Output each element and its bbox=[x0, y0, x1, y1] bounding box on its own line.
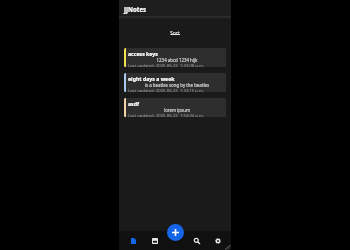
button[interactable]: Sort bbox=[167, 30, 183, 35]
button[interactable]: asdf bbox=[124, 98, 226, 117]
staticText: asdf bbox=[128, 100, 139, 107]
staticText: Last updated: 2025-06-23, 1:54:04 p.m. bbox=[128, 113, 205, 117]
staticText: access keys bbox=[128, 50, 158, 57]
button[interactable]: access keys bbox=[124, 48, 226, 67]
button[interactable]: Add note bbox=[167, 224, 184, 241]
staticText: is a beatles song by the beatles bbox=[128, 82, 226, 88]
staticText: 1234 abcd 1234 hijk bbox=[128, 57, 226, 63]
staticText: lorem ipsum bbox=[128, 107, 226, 113]
button[interactable]: eight days a week bbox=[124, 73, 226, 92]
button[interactable]: Notes bbox=[122, 231, 144, 250]
staticText: Sort bbox=[170, 30, 180, 35]
staticText: eight days a week bbox=[128, 75, 175, 82]
button[interactable]: Calendar bbox=[144, 231, 165, 250]
staticText: Last updated: 2025-06-23, 1:33:15 p.m. bbox=[128, 88, 205, 92]
button[interactable]: Settings bbox=[207, 231, 228, 250]
staticText: Last updated: 2025-06-23, 1:33:08 p.m. bbox=[128, 63, 205, 67]
button[interactable]: Search bbox=[186, 231, 207, 250]
staticText: JJNotes bbox=[124, 5, 147, 13]
